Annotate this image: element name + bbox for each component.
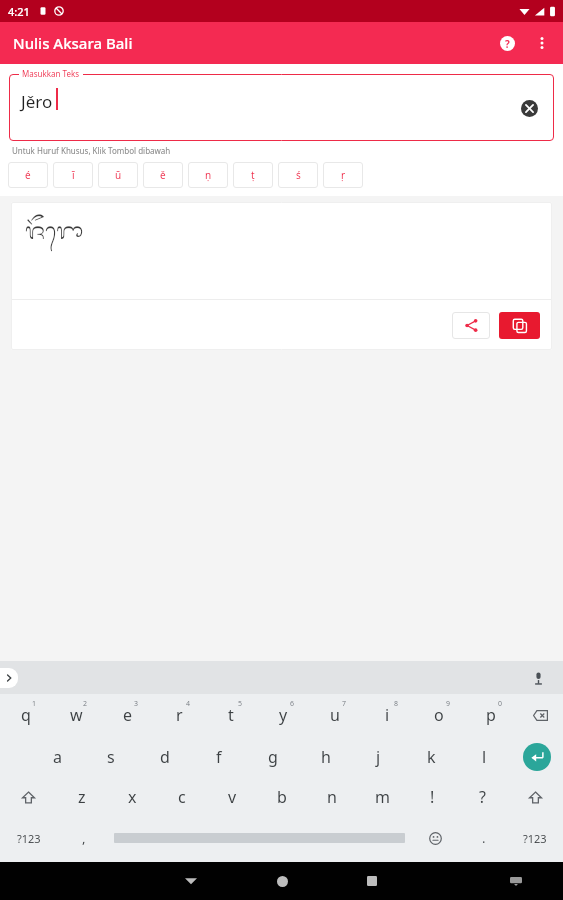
staticText: 4:21 xyxy=(8,4,30,19)
button[interactable]: w xyxy=(51,698,102,732)
button[interactable]: . xyxy=(461,824,507,852)
staticText: 2 xyxy=(83,699,88,709)
button[interactable]: Emoji xyxy=(409,824,461,852)
button[interactable]: a xyxy=(30,742,84,772)
button[interactable]: ?123 xyxy=(0,824,58,852)
button[interactable]: s xyxy=(84,742,138,772)
button[interactable]: ?123 xyxy=(507,824,563,852)
staticText: ś xyxy=(296,168,301,182)
button[interactable]: x xyxy=(107,782,157,812)
button[interactable]: k xyxy=(405,742,458,772)
button[interactable]: Hide keyboard xyxy=(501,866,531,896)
button[interactable]: h xyxy=(299,742,352,772)
button[interactable]: Back xyxy=(174,864,208,898)
staticText: j xyxy=(376,746,381,768)
staticText: q xyxy=(21,704,31,726)
staticText: ṛ xyxy=(341,168,346,182)
button[interactable] xyxy=(9,74,554,141)
staticText: w xyxy=(70,704,83,726)
button[interactable]: ṇ xyxy=(188,162,228,188)
button[interactable]: ? xyxy=(457,782,507,812)
button[interactable]: ī xyxy=(53,162,93,188)
staticText: u xyxy=(330,704,340,726)
staticText: s xyxy=(107,746,115,768)
button[interactable]: p xyxy=(465,698,517,732)
button[interactable]: d xyxy=(138,742,192,772)
staticText: é xyxy=(25,168,31,182)
staticText: ? xyxy=(479,786,486,808)
button[interactable]: Share xyxy=(452,312,490,339)
button[interactable]: ś xyxy=(278,162,318,188)
button[interactable]: ! xyxy=(407,782,457,812)
staticText: e xyxy=(123,704,133,726)
staticText: v xyxy=(228,786,237,808)
button[interactable]: c xyxy=(157,782,207,812)
button[interactable]: u xyxy=(309,698,361,732)
staticText: ?123 xyxy=(17,831,41,846)
staticText: ! xyxy=(430,786,435,808)
button[interactable]: é xyxy=(8,162,48,188)
button[interactable]: l xyxy=(458,742,511,772)
button[interactable]: z xyxy=(56,782,107,812)
staticText: ī xyxy=(72,168,75,182)
button[interactable]: v xyxy=(207,782,257,812)
staticText: n xyxy=(327,786,337,808)
staticText: f xyxy=(216,746,222,768)
button[interactable]: g xyxy=(246,742,299,772)
staticText: b xyxy=(277,786,287,808)
button[interactable]: i xyxy=(361,698,413,732)
staticText: l xyxy=(482,746,487,768)
staticText: i xyxy=(385,704,390,726)
staticText: t xyxy=(228,704,234,726)
button[interactable]: n xyxy=(307,782,357,812)
staticText: 5 xyxy=(238,699,243,709)
button[interactable]: t xyxy=(205,698,257,732)
button[interactable]: Enter xyxy=(511,742,563,772)
button[interactable]: m xyxy=(357,782,407,812)
staticText: 1 xyxy=(32,699,37,709)
button[interactable]: , xyxy=(58,824,110,852)
staticText: Nulis Aksara Bali xyxy=(13,33,133,53)
staticText: 3 xyxy=(134,699,139,709)
button[interactable]: j xyxy=(352,742,405,772)
staticText: Untuk Huruf Khusus, Klik Tombol dibawah xyxy=(12,145,171,156)
staticText: 6 xyxy=(290,699,295,709)
staticText: g xyxy=(268,746,278,768)
staticText: 8 xyxy=(394,699,399,709)
button[interactable]: o xyxy=(413,698,465,732)
staticText: Masukkan Teks xyxy=(22,68,80,79)
button[interactable]: More options xyxy=(525,26,559,60)
staticText: y xyxy=(279,704,288,726)
button[interactable]: Help xyxy=(489,25,525,61)
button[interactable]: f xyxy=(192,742,246,772)
staticText: ṭ xyxy=(251,168,255,182)
button[interactable]: Recent apps xyxy=(355,864,389,898)
button[interactable]: b xyxy=(257,782,307,812)
button[interactable]: q xyxy=(0,698,51,732)
staticText: d xyxy=(160,746,170,768)
button[interactable]: Copy xyxy=(499,312,540,339)
staticText: 7 xyxy=(342,699,347,709)
staticText: a xyxy=(53,746,62,768)
button[interactable]: e xyxy=(102,698,153,732)
staticText: Jěro xyxy=(21,90,53,113)
button[interactable]: Home xyxy=(265,864,299,898)
staticText: 9 xyxy=(446,699,451,709)
button[interactable]: ṛ xyxy=(323,162,363,188)
button[interactable]: Space xyxy=(114,824,405,852)
button[interactable]: Backspace xyxy=(517,698,563,732)
button[interactable]: Shift xyxy=(507,782,563,812)
staticText: p xyxy=(486,704,496,726)
button[interactable]: Voice input xyxy=(527,667,549,689)
button[interactable]: Clear text xyxy=(514,93,544,123)
button[interactable]: Shift xyxy=(0,782,56,812)
button[interactable]: ṭ xyxy=(233,162,273,188)
staticText: ? xyxy=(505,37,510,51)
staticText: ū xyxy=(115,168,122,182)
button[interactable]: ū xyxy=(98,162,138,188)
button[interactable]: Expand toolbar xyxy=(0,668,18,688)
staticText: ?123 xyxy=(523,831,547,846)
button[interactable]: y xyxy=(257,698,309,732)
button[interactable]: ě xyxy=(143,162,183,188)
button[interactable]: r xyxy=(153,698,205,732)
